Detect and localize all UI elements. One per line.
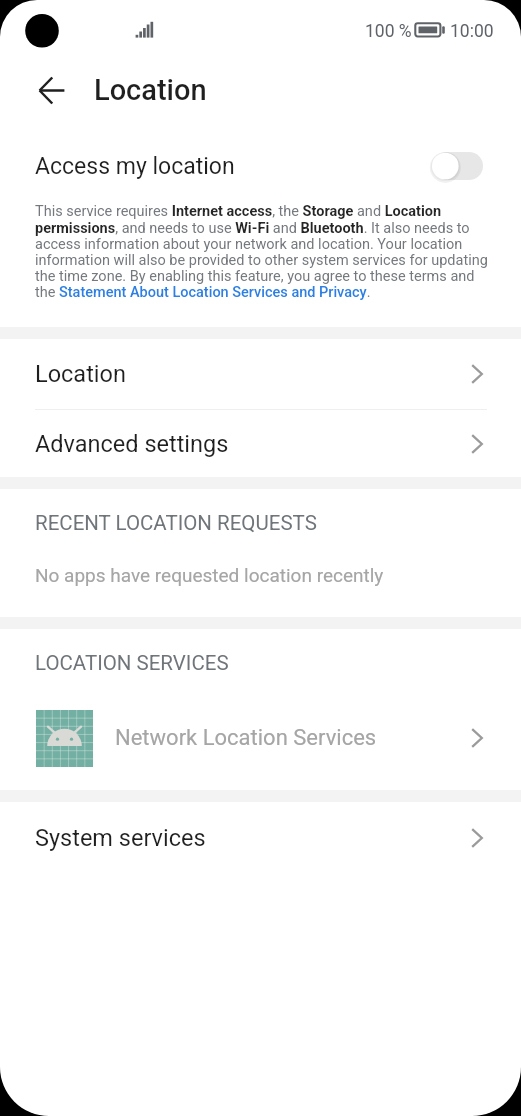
- staticText: Location: [94, 73, 207, 107]
- staticText: Advanced settings: [35, 430, 229, 458]
- button[interactable]: System services: [0, 802, 521, 874]
- staticText: Access my location: [35, 153, 235, 180]
- button[interactable]: Location: [0, 339, 521, 409]
- staticText: System services: [35, 824, 206, 852]
- staticText: No apps have requested location recently: [35, 564, 384, 586]
- staticText: Location: [35, 360, 126, 388]
- button[interactable]: Access my location: [0, 129, 521, 203]
- staticText: 10:00: [450, 21, 494, 42]
- staticText: 100 %: [365, 21, 412, 42]
- button[interactable]: Advanced settings: [0, 410, 521, 477]
- staticText: Network Location Services: [115, 725, 377, 751]
- staticText: This service requires Internet access, t…: [35, 203, 492, 300]
- staticText: RECENT LOCATION REQUESTS: [35, 511, 317, 535]
- button[interactable]: Navigate up: [23, 62, 81, 118]
- staticText: LOCATION SERVICES: [35, 651, 229, 675]
- button[interactable]: Network Location Services: [0, 696, 521, 780]
